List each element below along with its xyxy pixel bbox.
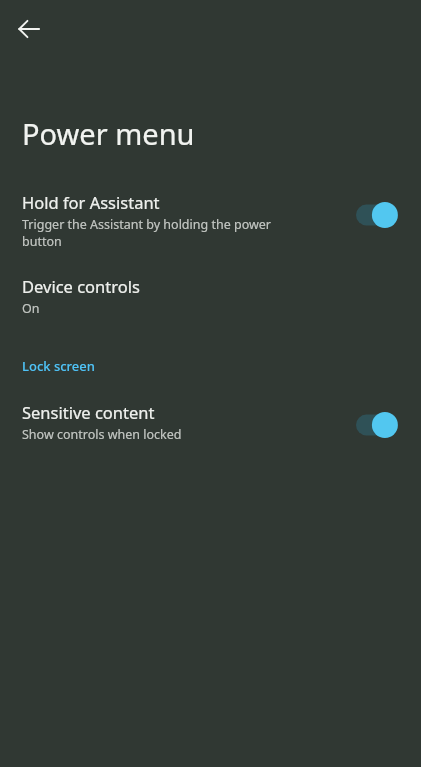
button[interactable]: Sensitive content [0,401,421,447]
staticText: Trigger the Assistant by holding the pow… [22,216,272,249]
staticText: On [22,300,40,317]
staticText: Hold for Assistant [22,191,160,213]
button[interactable]: Device controls [0,275,421,317]
staticText: Device controls [22,275,140,297]
staticText: Sensitive content [22,401,155,423]
button[interactable]: Hold for Assistant toggle [347,193,409,237]
staticText: Show controls when locked [22,426,182,443]
staticText: Power menu [22,114,195,153]
button[interactable]: Back [1,1,57,57]
staticText: Lock screen [22,357,95,375]
button[interactable]: Hold for Assistant [0,191,421,249]
button[interactable]: Sensitive content toggle [347,403,409,447]
